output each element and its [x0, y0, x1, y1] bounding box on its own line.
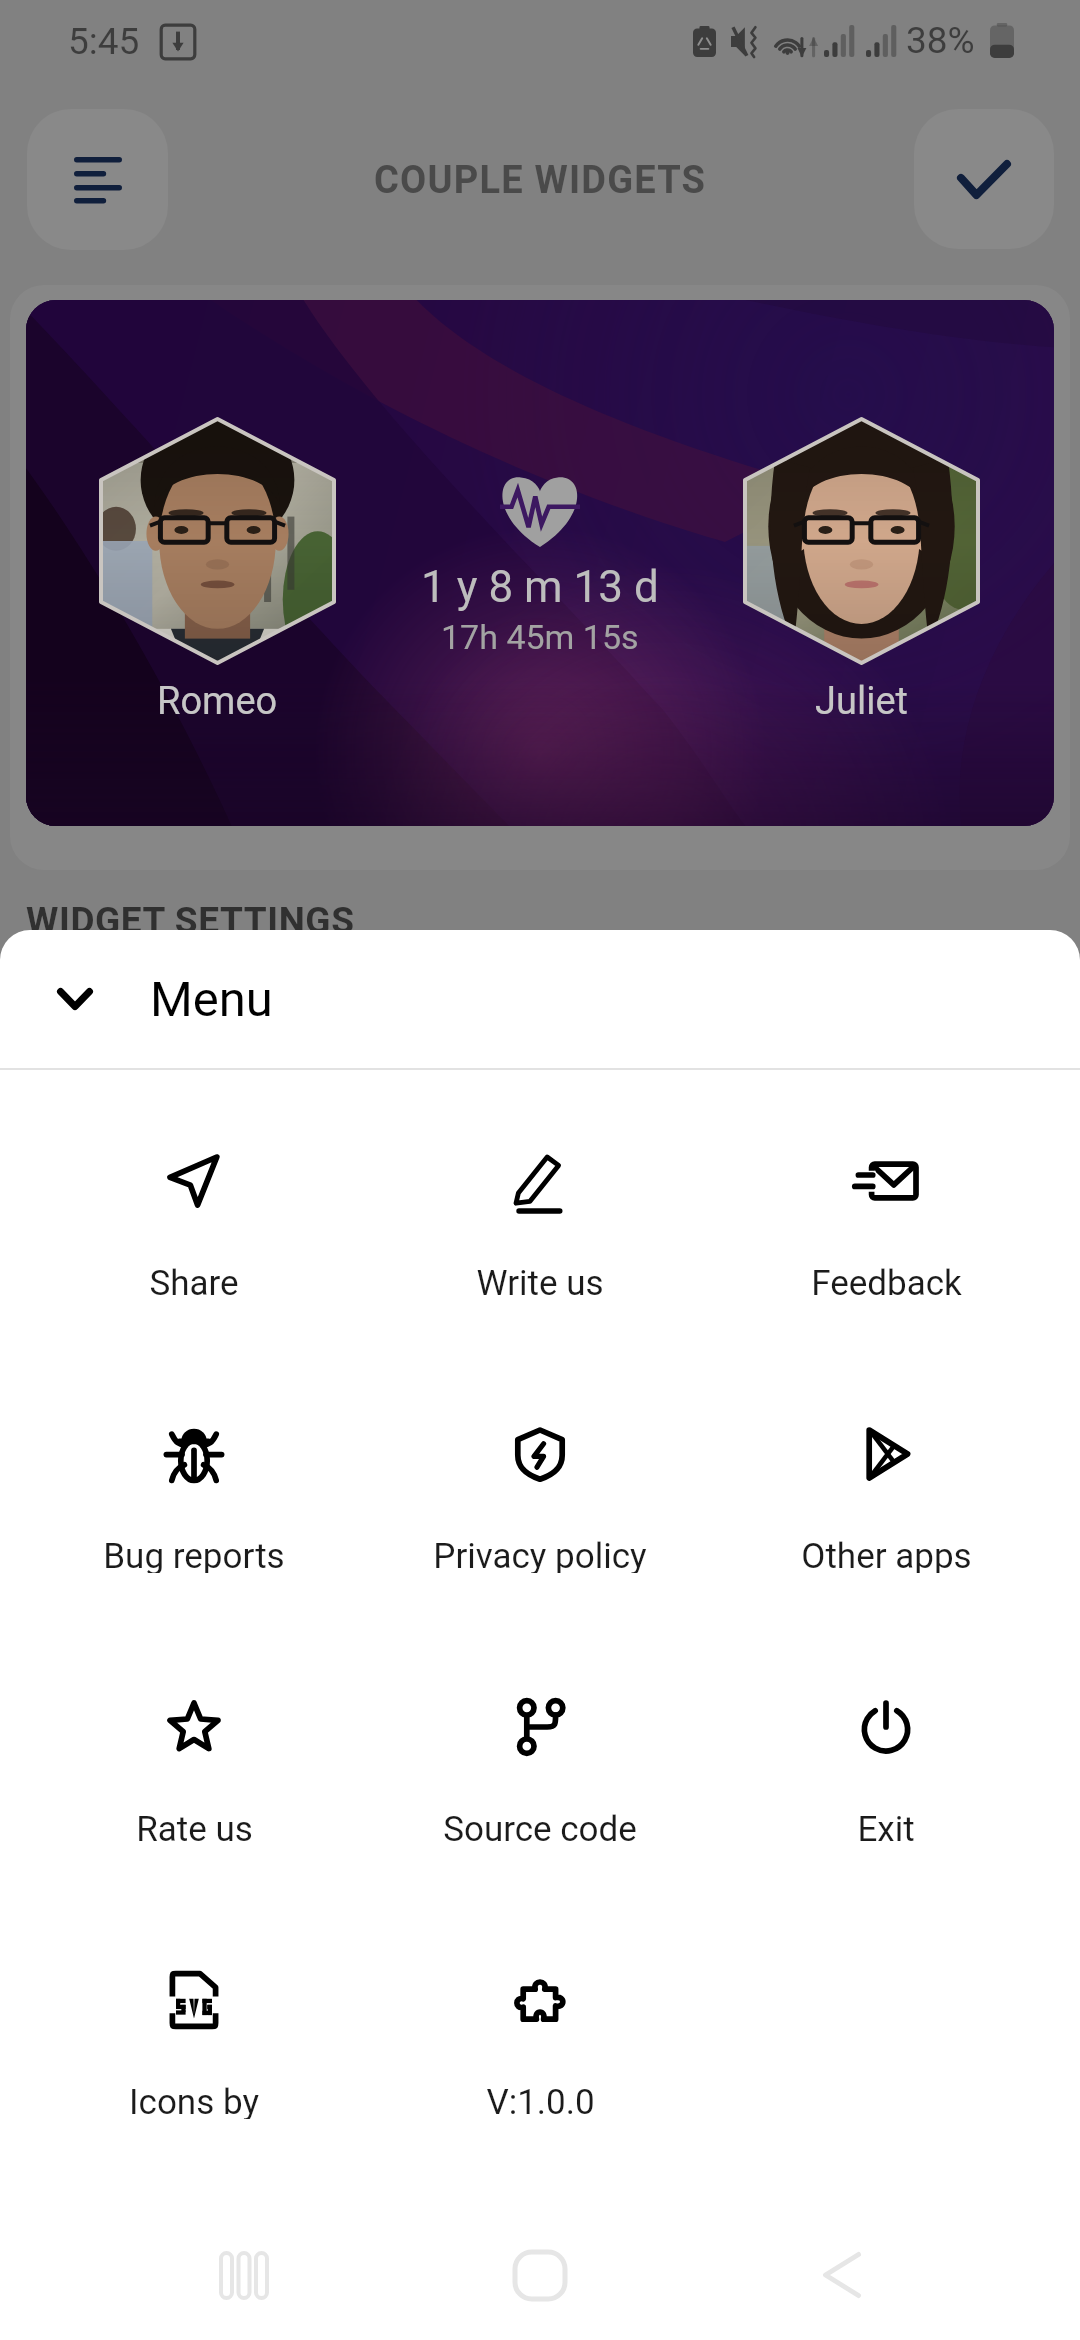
button[interactable]: Recents: [152, 2210, 332, 2340]
staticText: Menu: [150, 971, 273, 1028]
staticText: 5:45: [68, 20, 140, 63]
staticText: Feedback: [811, 1263, 962, 1300]
staticText: Share: [149, 1263, 239, 1300]
staticText: Other apps: [801, 1536, 972, 1573]
button[interactable]: Home: [450, 2210, 630, 2340]
button[interactable]: Widget preview: [26, 300, 1054, 826]
button[interactable]: V:1.0.0: [367, 1889, 713, 2119]
staticText: 17h 45m 15s: [441, 617, 639, 657]
staticText: Rate us: [136, 1809, 253, 1846]
staticText: Privacy policy: [433, 1536, 647, 1573]
staticText: V:1.0.0: [486, 2082, 595, 2119]
button[interactable]: Bug reports: [21, 1343, 367, 1573]
button[interactable]: Privacy policy: [367, 1343, 713, 1573]
button[interactable]: Icons by: [21, 1889, 367, 2119]
button[interactable]: Source code: [367, 1616, 713, 1846]
staticText: Write us: [476, 1263, 604, 1300]
staticText: Source code: [443, 1809, 637, 1846]
staticText: Romeo: [157, 679, 278, 724]
staticText: Juliet: [815, 679, 908, 724]
button[interactable]: Menu: [27, 109, 168, 250]
button[interactable]: Rate us: [21, 1616, 367, 1846]
button[interactable]: Other apps: [713, 1343, 1059, 1573]
staticText: Bug reports: [103, 1536, 285, 1573]
staticText: 1 y 8 m 13 d: [421, 561, 659, 613]
staticText: COUPLE WIDGETS: [374, 158, 707, 203]
button[interactable]: Back: [752, 2210, 932, 2340]
button[interactable]: Menu: [0, 930, 1080, 1068]
staticText: WIDGET SETTINGS: [26, 899, 355, 942]
button[interactable]: Share: [21, 1070, 367, 1300]
staticText: 38%: [906, 19, 975, 62]
button[interactable]: Write us: [367, 1070, 713, 1300]
button[interactable]: Feedback: [713, 1070, 1059, 1300]
staticText: Icons by: [129, 2082, 259, 2119]
button[interactable]: Exit: [713, 1616, 1059, 1846]
button[interactable]: Confirm: [914, 109, 1054, 249]
staticText: Exit: [857, 1809, 915, 1846]
